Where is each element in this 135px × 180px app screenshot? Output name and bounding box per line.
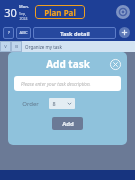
button[interactable]: Add [119,27,130,38]
staticText: Add task [46,57,90,71]
staticText: Sep, [19,11,26,16]
button[interactable]: ABC [16,27,31,39]
staticText: V [4,44,7,50]
staticText: Add [62,120,74,128]
staticText: Task detail [60,30,90,37]
staticText: Organize my task [25,44,62,50]
button[interactable]: Task detail [33,27,116,39]
staticText: 30 [4,5,17,20]
button[interactable]: 8 [49,98,75,109]
staticText: Please enter your task description. [21,81,91,87]
staticText: B [15,44,18,50]
button[interactable]: Add [52,117,83,130]
button[interactable]: Please enter your task description. [14,76,121,91]
staticText: Plan Pal [44,7,76,18]
staticText: Mon. [19,4,29,9]
staticText: ? [8,30,10,36]
button[interactable]: Settings [116,5,130,19]
staticText: 2024 [19,16,28,21]
button[interactable]: Plan Pal [35,5,85,19]
button[interactable]: ? [3,27,14,39]
staticText: ABC [19,30,28,36]
staticText: Order [22,100,39,108]
staticText: 8 [52,100,56,107]
button[interactable]: Close [110,59,121,70]
